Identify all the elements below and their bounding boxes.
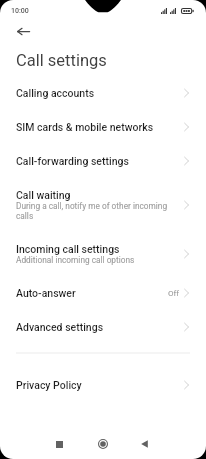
- button[interactable]: Call-forwarding settings: [0, 144, 206, 178]
- button[interactable]: Privacy Policy: [0, 368, 206, 402]
- staticText: Privacy Policy: [16, 379, 82, 391]
- staticText: Off: [168, 289, 180, 298]
- staticText: Call-forwarding settings: [16, 155, 129, 167]
- button[interactable]: Back: [17, 20, 39, 42]
- button[interactable]: Home: [92, 433, 114, 455]
- button[interactable]: Recents: [48, 433, 70, 455]
- staticText: Additional incoming call options: [16, 255, 172, 265]
- button[interactable]: SIM cards & mobile networks: [0, 110, 206, 144]
- staticText: SIM cards & mobile networks: [16, 121, 154, 133]
- button[interactable]: Incoming call settings: [0, 232, 206, 276]
- button[interactable]: Back: [136, 433, 158, 455]
- staticText: Advanced settings: [16, 321, 104, 333]
- staticText: During a call, notify me of other incomi…: [16, 201, 172, 221]
- button[interactable]: Advanced settings: [0, 310, 206, 344]
- staticText: 10:00: [11, 7, 29, 15]
- staticText: Calling accounts: [16, 87, 95, 99]
- button[interactable]: Call waiting: [0, 178, 206, 232]
- staticText: Incoming call settings: [16, 243, 120, 255]
- button[interactable]: Auto-answer: [0, 276, 206, 310]
- button[interactable]: Calling accounts: [0, 76, 206, 110]
- staticText: Auto-answer: [16, 287, 76, 299]
- staticText: Call settings: [16, 51, 107, 70]
- staticText: Call waiting: [16, 189, 71, 201]
